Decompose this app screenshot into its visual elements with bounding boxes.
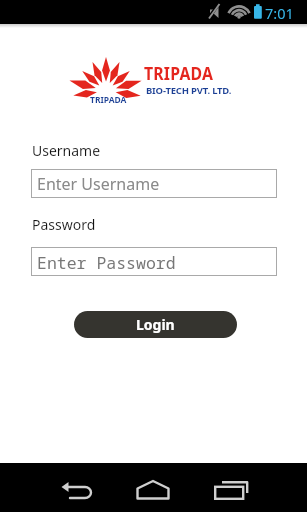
button[interactable] (61, 481, 94, 500)
staticText: TRIPADA (90, 94, 127, 106)
staticText: Login (136, 315, 175, 334)
button[interactable] (214, 481, 248, 500)
staticText: Enter Username (37, 173, 160, 195)
staticText: BIO-TECH PVT. LTD. (146, 84, 232, 97)
button[interactable] (136, 480, 170, 500)
button[interactable]: Enter Username (31, 169, 277, 198)
staticText: TRIPADA (144, 62, 214, 85)
staticText: 7:01 (265, 3, 294, 23)
button[interactable]: Login (74, 311, 237, 338)
staticText: Enter Password (37, 251, 176, 273)
staticText: Password (32, 215, 96, 234)
staticText: Username (32, 141, 101, 160)
button[interactable]: Enter Password (31, 247, 277, 276)
